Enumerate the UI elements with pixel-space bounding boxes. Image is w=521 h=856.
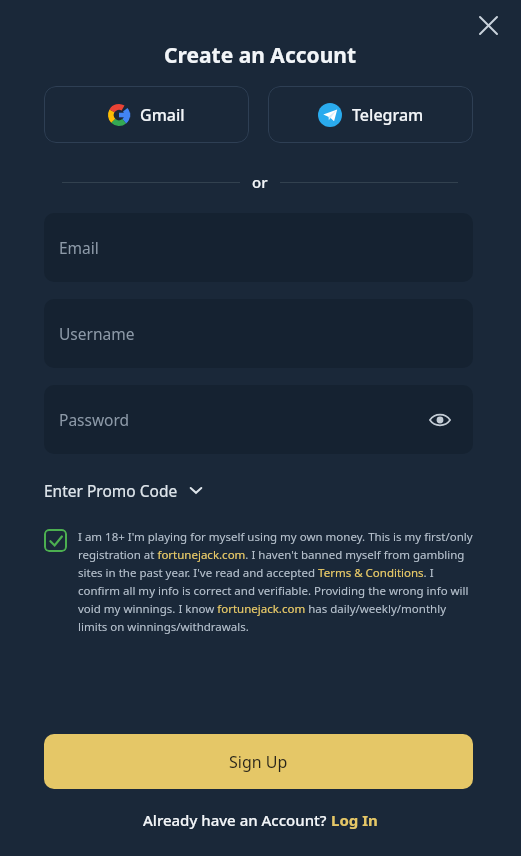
button[interactable]: Username xyxy=(44,299,473,368)
staticText: Enter Promo Code xyxy=(44,480,178,501)
button[interactable]: Gmail xyxy=(44,86,249,143)
button[interactable]: Accept terms checkbox xyxy=(44,529,473,634)
staticText: Sign Up xyxy=(229,751,288,773)
staticText: Log In xyxy=(331,810,378,830)
button[interactable]: Show password xyxy=(425,405,455,435)
button[interactable]: Close xyxy=(470,7,506,43)
button[interactable]: Telegram xyxy=(268,86,473,143)
staticText: Username xyxy=(59,323,135,344)
staticText: Gmail xyxy=(140,104,185,126)
staticText: I am 18+ I'm playing for myself using my… xyxy=(78,529,473,634)
staticText: Create an Account xyxy=(164,41,357,70)
staticText: Already have an Account? xyxy=(143,810,331,830)
button[interactable]: Sign Up xyxy=(44,734,473,789)
other: Accept terms checkbox xyxy=(44,529,67,552)
staticText: or xyxy=(252,172,268,192)
button[interactable]: Already have an Account? xyxy=(143,810,378,830)
staticText: Password xyxy=(59,409,130,430)
button[interactable]: Email xyxy=(44,213,473,282)
staticText: Telegram xyxy=(352,104,424,126)
staticText: Email xyxy=(59,237,99,258)
button[interactable]: Password xyxy=(44,385,473,454)
button[interactable]: Enter Promo Code xyxy=(44,476,203,504)
